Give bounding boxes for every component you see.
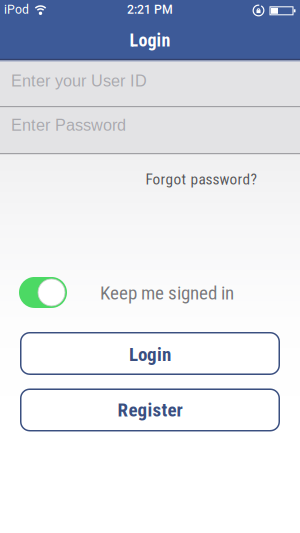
- button[interactable]: [19, 277, 67, 308]
- staticText: Enter Password: [11, 116, 126, 134]
- staticText: Enter your User ID: [11, 72, 147, 90]
- button[interactable]: Register: [20, 388, 280, 431]
- staticText: Keep me signed in: [100, 282, 234, 304]
- staticText: 2:21 PM: [127, 2, 173, 17]
- button[interactable]: Login: [20, 332, 280, 375]
- button[interactable]: Forgot password?: [145, 170, 256, 188]
- staticText: Login: [129, 343, 171, 366]
- staticText: iPod: [4, 2, 29, 17]
- button[interactable]: Enter Password: [0, 107, 300, 153]
- staticText: Forgot password?: [145, 170, 256, 188]
- staticText: Register: [117, 399, 182, 421]
- button[interactable]: Enter your User ID: [0, 62, 300, 106]
- staticText: Login: [129, 30, 170, 51]
